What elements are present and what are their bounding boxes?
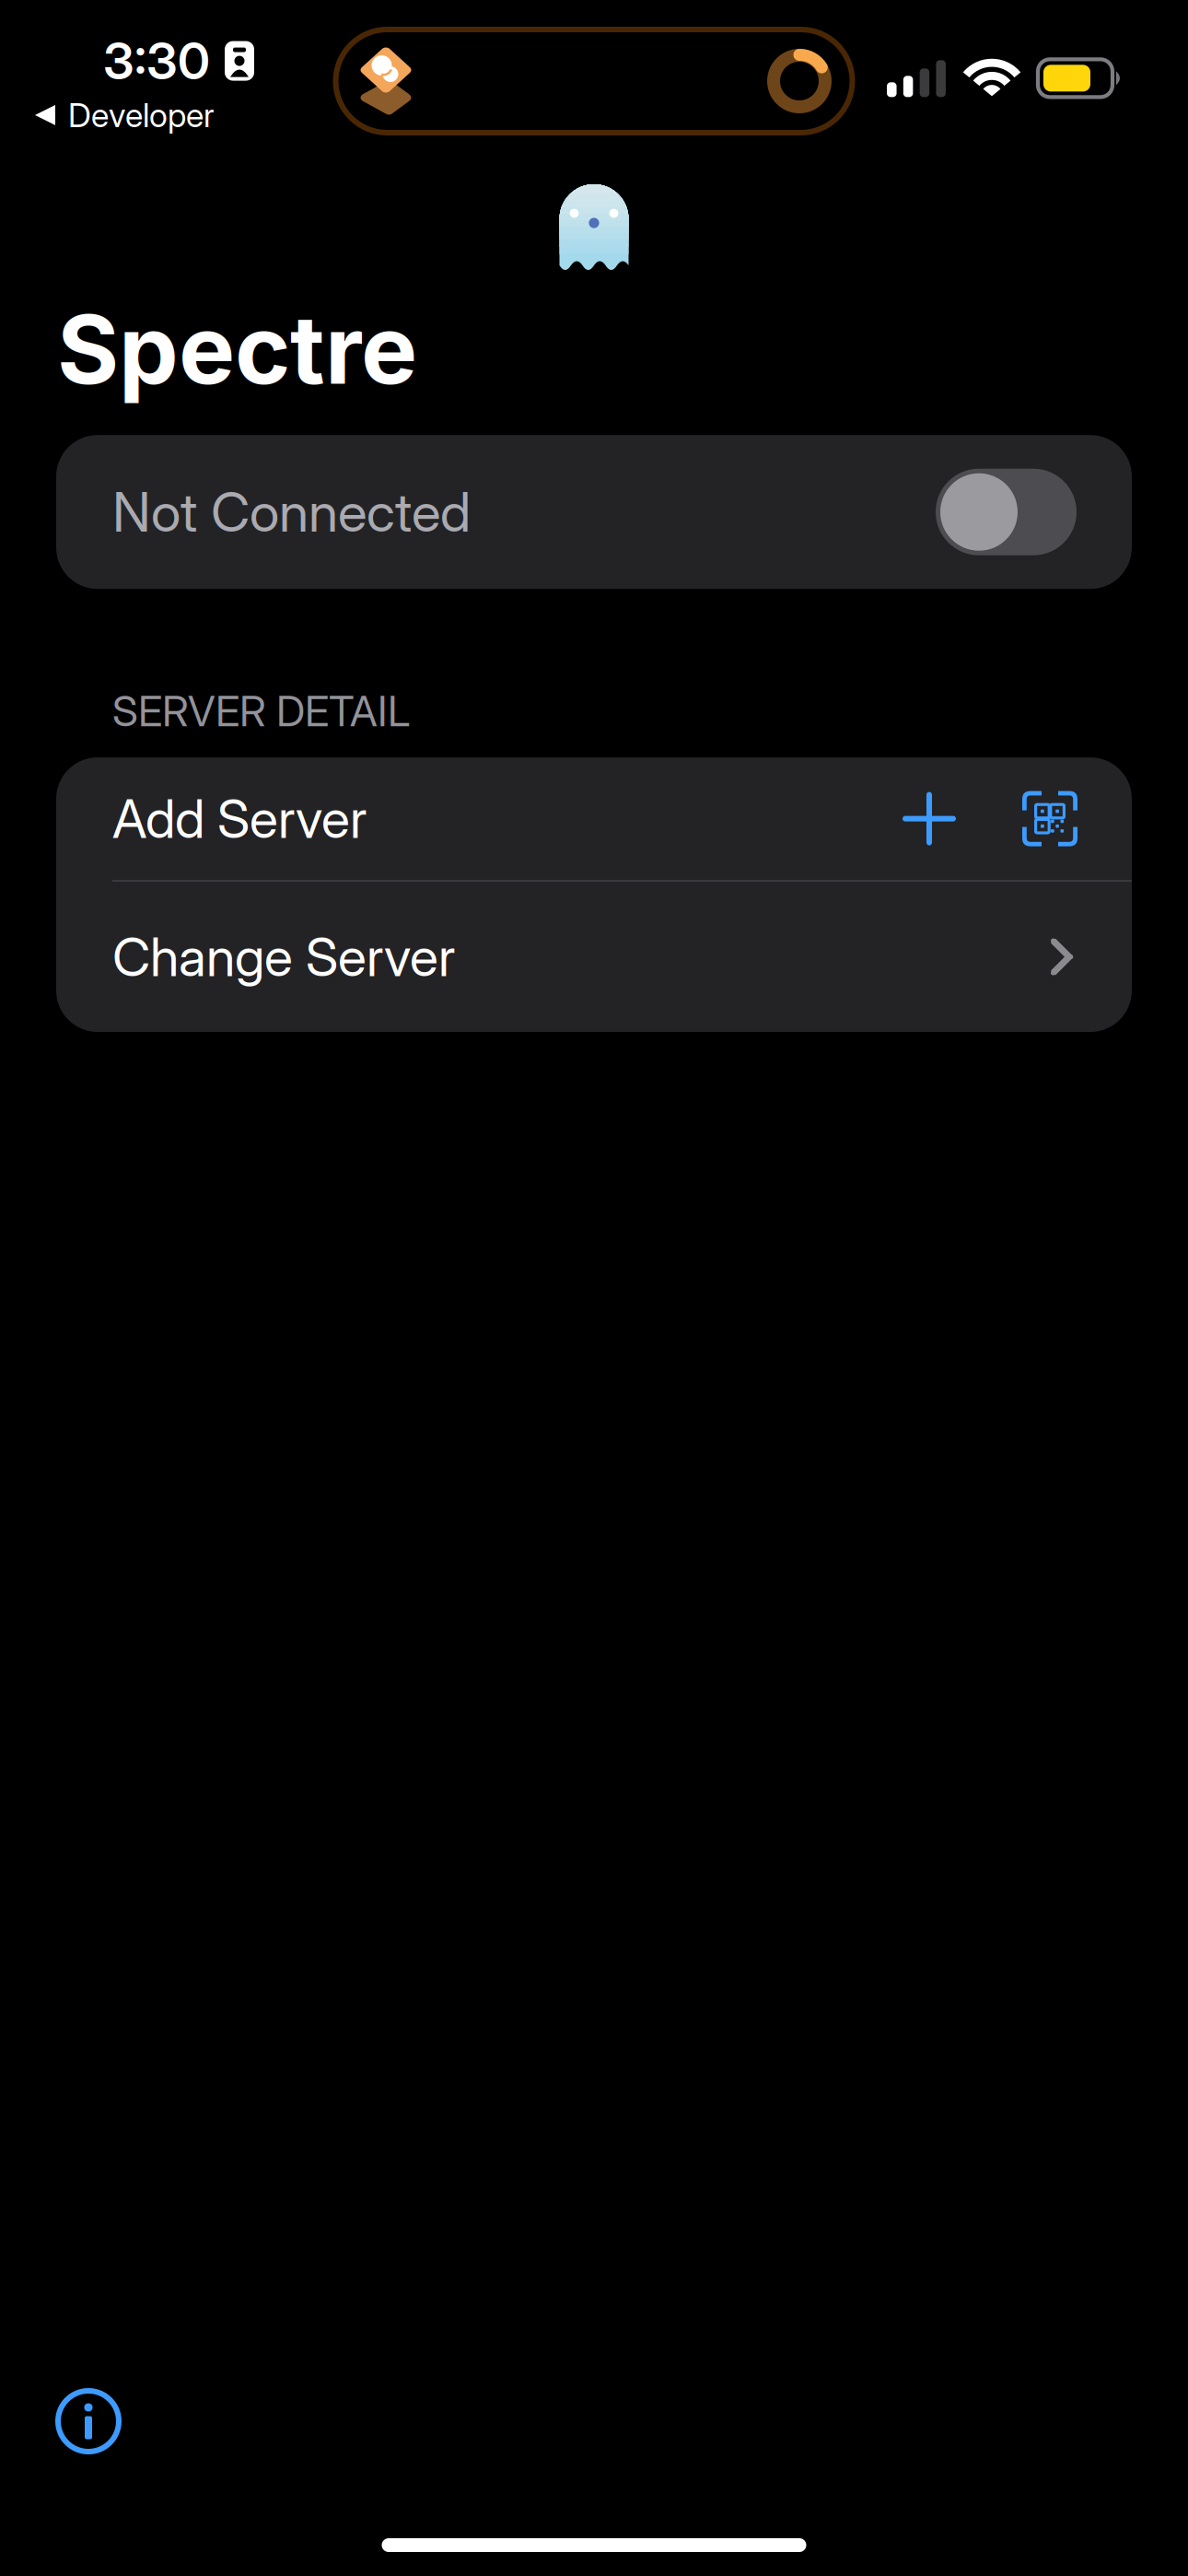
staticText: Change Server xyxy=(112,925,455,989)
button[interactable]: About Spectre xyxy=(36,2369,141,2474)
staticText: Not Connected xyxy=(112,479,471,545)
button[interactable]: Change Server xyxy=(56,882,1132,1032)
staticText: 3:30 xyxy=(103,30,210,91)
button[interactable]: Developer xyxy=(0,91,215,135)
button[interactable]: Not Connected xyxy=(56,435,1132,589)
staticText: Spectre xyxy=(57,292,417,406)
staticText: SERVER DETAIL xyxy=(112,686,410,736)
button[interactable]: Add Server xyxy=(56,757,1132,880)
staticText: Add Server xyxy=(112,787,367,851)
staticText: Developer xyxy=(68,95,215,135)
